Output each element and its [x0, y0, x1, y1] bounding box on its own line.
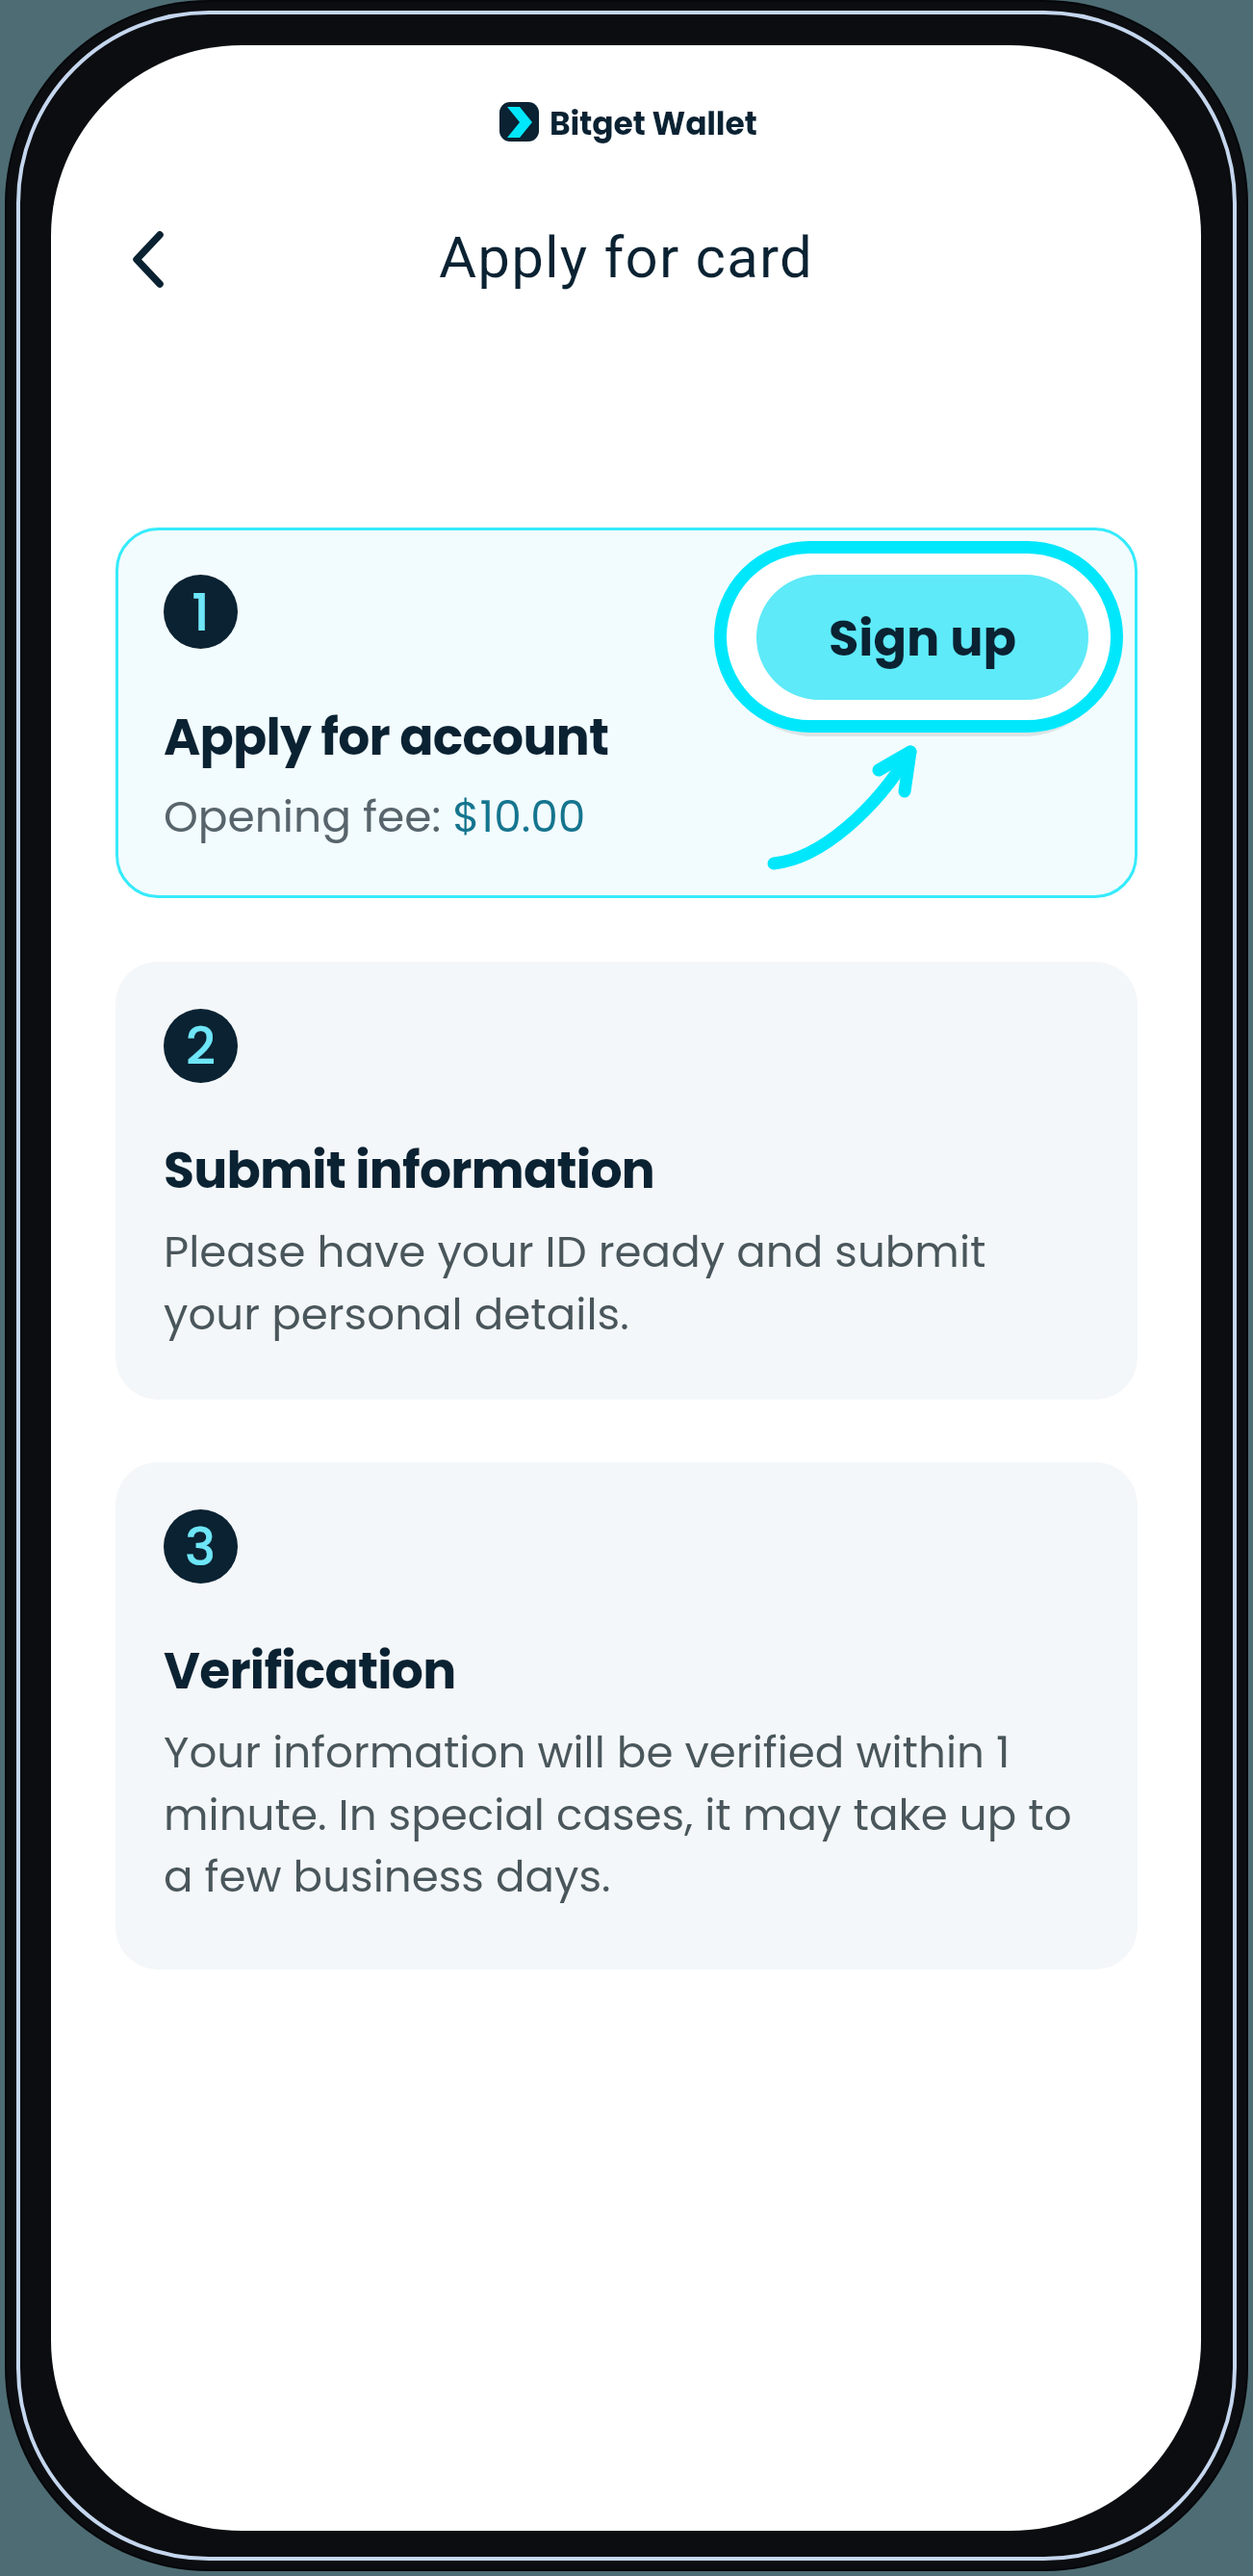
staticText: Sign up [829, 604, 1017, 672]
staticText: Your information will be verified within… [164, 1722, 1072, 1907]
staticText: Apply for account [164, 702, 609, 772]
staticText: 3 [185, 1510, 217, 1584]
staticText: 1 [192, 576, 210, 649]
staticText: 2 [186, 1010, 217, 1083]
button[interactable]: Sign up [714, 541, 1123, 733]
button[interactable]: Back [102, 213, 194, 305]
staticText: Please have your ID ready and submit you… [164, 1222, 986, 1345]
button[interactable]: 3 [115, 1462, 1138, 1970]
staticText: Verification [164, 1636, 456, 1706]
staticText: Opening fee: $10.00 [164, 786, 586, 847]
staticText: Apply for card [51, 223, 1201, 291]
staticText: Bitget Wallet [550, 101, 757, 145]
button[interactable]: 2 [115, 962, 1138, 1400]
staticText: Submit information [164, 1135, 654, 1205]
